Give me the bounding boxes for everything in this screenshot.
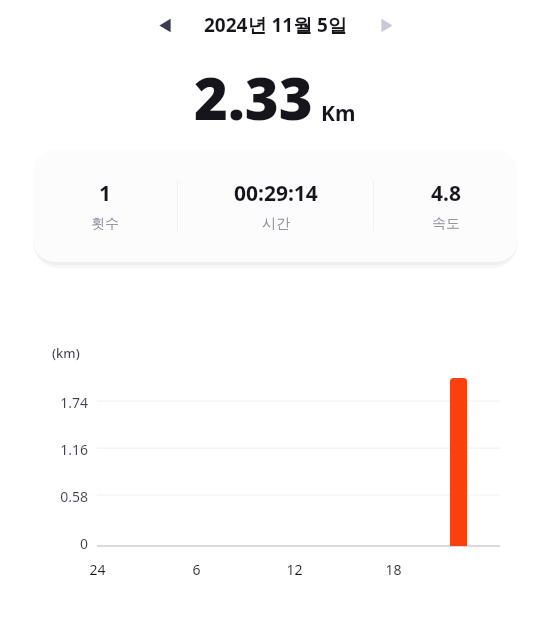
staticText: 1.16 xyxy=(60,440,88,459)
staticText: 6 xyxy=(192,560,201,579)
staticText: 18 xyxy=(385,560,402,579)
staticText: 0.58 xyxy=(60,487,88,506)
button[interactable]: Previous day xyxy=(145,5,185,45)
button[interactable]: 00:29:14 xyxy=(178,150,373,262)
staticText: 2.33 xyxy=(194,58,313,137)
staticText: 횟수 xyxy=(91,215,119,233)
staticText: 속도 xyxy=(432,215,460,233)
staticText: 시간 xyxy=(262,215,290,233)
staticText: (km) xyxy=(52,344,80,362)
staticText: 1.74 xyxy=(60,393,88,412)
button[interactable]: Next day xyxy=(366,5,406,45)
button[interactable]: 1 xyxy=(33,150,177,262)
staticText: 2024년 11월 5일 xyxy=(204,12,347,38)
staticText: Km xyxy=(321,99,356,128)
staticText: 12 xyxy=(286,560,303,579)
button[interactable]: 1 xyxy=(33,150,518,262)
staticText: 24 xyxy=(89,560,106,579)
staticText: 0 xyxy=(79,534,88,553)
button[interactable]: 2024년 11월 5일 xyxy=(0,0,550,50)
button[interactable]: 4.8 xyxy=(374,150,518,262)
staticText: 00:29:14 xyxy=(234,179,318,208)
staticText: 1 xyxy=(99,179,112,208)
staticText: 4.8 xyxy=(431,179,461,208)
